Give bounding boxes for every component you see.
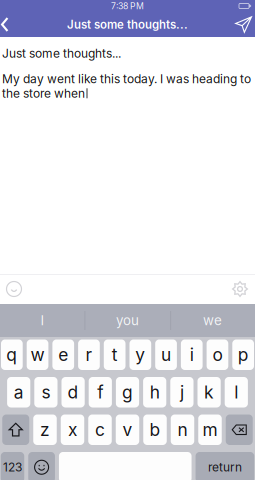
button[interactable]: n [171,414,194,445]
button[interactable]: j [170,377,193,407]
staticText: v [122,419,132,440]
staticText: n [177,419,187,440]
staticText: d [68,382,79,403]
button[interactable]: a [7,377,30,407]
button[interactable]: g [116,377,139,407]
button[interactable]: Mood [0,274,28,304]
staticText: f [97,382,103,403]
button[interactable]: Emoji [28,452,55,480]
button[interactable]: u [155,339,177,370]
button[interactable]: you [85,304,170,337]
staticText: z [40,419,50,440]
button[interactable]: r [78,339,100,370]
button[interactable]: k [197,377,221,407]
button[interactable]: s [34,377,57,407]
staticText: y [135,344,145,365]
staticText: p [238,344,249,365]
button[interactable]: b [143,414,167,445]
staticText: 123 [3,460,22,474]
button[interactable]: Shift [2,414,29,445]
button[interactable] [59,452,192,480]
staticText: b [149,419,160,440]
button[interactable]: i [181,339,203,370]
button[interactable]: Settings [226,274,254,304]
staticText: q [6,344,17,365]
staticText: m [202,419,217,440]
staticText: c [95,419,105,440]
button[interactable]: o [207,339,228,370]
staticText: t [112,344,118,365]
button[interactable]: t [104,339,125,370]
button[interactable]: v [116,414,139,445]
button[interactable]: l [225,377,248,407]
button[interactable]: we [170,304,255,337]
button[interactable]: I [0,304,85,337]
staticText: l [234,382,238,403]
staticText: s [41,382,50,403]
staticText: I [40,312,44,328]
staticText: Just some thoughts... [2,46,121,60]
button[interactable]: q [1,339,23,370]
button[interactable]: return [196,452,254,480]
staticText: w [31,344,45,365]
button[interactable]: Delete [226,414,253,445]
staticText: return [208,460,242,474]
button[interactable]: e [52,339,74,370]
staticText: k [204,382,214,403]
staticText: e [58,344,68,365]
button[interactable]: d [61,377,85,407]
staticText: the store when [2,86,85,100]
staticText: h [150,382,160,403]
button[interactable]: Send [228,12,255,37]
button[interactable]: h [143,377,166,407]
button[interactable]: c [88,414,112,445]
button[interactable]: m [198,414,222,445]
button[interactable]: p [232,339,254,370]
button[interactable]: f [89,377,112,407]
button[interactable]: Back [0,12,21,37]
staticText: o [212,344,222,365]
staticText: r [85,344,92,365]
staticText: i [190,344,194,365]
button[interactable]: 123 [1,452,24,480]
staticText: we [203,312,222,328]
staticText: 7:38 PM [111,1,144,11]
staticText: you [116,312,139,328]
button[interactable]: x [61,414,84,445]
staticText: Just some thoughts... [67,18,188,31]
button[interactable]: z [33,414,57,445]
staticText: u [161,344,171,365]
staticText: x [68,419,77,440]
staticText: j [180,382,184,403]
button[interactable]: w [27,339,48,370]
button[interactable]: y [129,339,151,370]
staticText: a [14,382,24,403]
staticText: g [122,382,133,403]
staticText: My day went like this today. I was headi… [2,71,251,86]
